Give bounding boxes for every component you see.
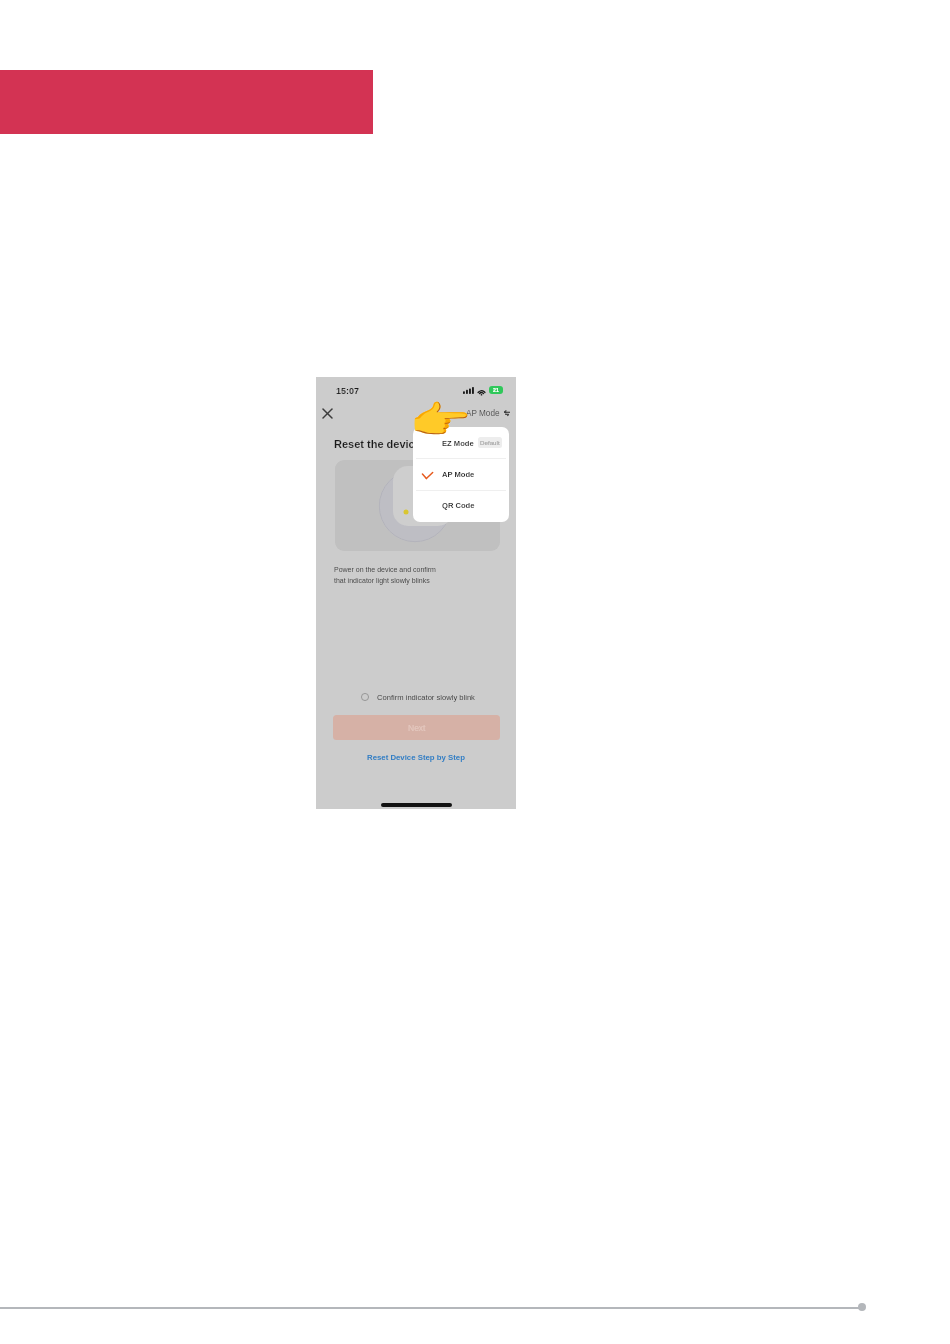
staticText: AP Mode: [466, 409, 500, 418]
button[interactable]: Confirm indicator slowly blink: [361, 691, 475, 703]
staticText: Default: [480, 439, 500, 446]
staticText: Reset the device: [334, 438, 421, 450]
staticText: 21: [493, 387, 499, 393]
button[interactable]: Close: [318, 404, 336, 422]
staticText: AP Mode: [442, 470, 475, 478]
button[interactable]: QR Code: [413, 489, 509, 520]
staticText: Next: [408, 723, 426, 732]
button[interactable]: Reset Device Step by Step: [367, 753, 465, 762]
staticText: EZ Mode: [442, 439, 474, 447]
button[interactable]: AP Mode: [413, 458, 509, 489]
staticText: that indicator light slowly blinks: [334, 577, 430, 585]
staticText: 👉: [409, 398, 472, 435]
staticText: QR Code: [442, 501, 475, 509]
staticText: 15:07: [336, 386, 360, 396]
button[interactable]: EZ Mode: [413, 427, 509, 458]
staticText: Confirm indicator slowly blink: [377, 693, 475, 701]
staticText: Power on the device and confirm: [334, 566, 436, 574]
button[interactable]: AP Mode: [466, 404, 510, 422]
